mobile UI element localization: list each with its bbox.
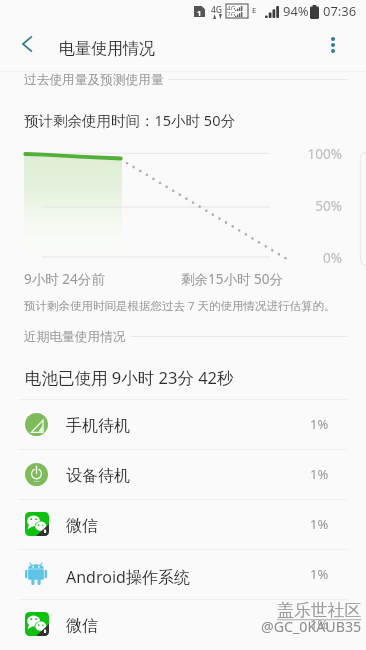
staticText: 1% (310, 465, 329, 483)
staticText: @GC_0KAUB35 (261, 617, 362, 636)
staticText: 9小时 24分前 (24, 270, 105, 288)
staticText: 1% (310, 515, 329, 533)
button[interactable]: Back (4, 25, 50, 63)
staticText: Android操作系统 (66, 566, 190, 588)
button[interactable]: 微信 (0, 499, 366, 549)
staticText: 1 (197, 8, 202, 18)
button[interactable]: 手机待机 (0, 399, 366, 449)
button[interactable]: 设备待机 (0, 449, 366, 499)
staticText: 0% (291, 249, 342, 267)
staticText: 剩余15小时 50分 (181, 270, 283, 288)
staticText: 100% (291, 145, 342, 163)
staticText: 电量使用情况 (59, 39, 155, 59)
staticText: 1% (310, 415, 329, 433)
button[interactable]: 微信 (0, 599, 366, 649)
staticText: 1% (310, 565, 329, 583)
staticText: 50% (291, 197, 342, 215)
staticText: 预计剩余使用时间是根据您过去 7 天的使用情况进行估算的。 (24, 298, 336, 314)
staticText: 电池已使用 9小时 23分 42秒 (25, 366, 234, 389)
staticText: 预计剩余使用时间：15小时 50分 (24, 110, 235, 130)
staticText: 设备待机 (66, 466, 130, 486)
staticText: 4G (211, 4, 223, 16)
staticText: 07:36 (323, 2, 357, 20)
staticText: 微信 (66, 516, 98, 536)
staticText: 微信 (66, 616, 98, 636)
staticText: 过去使用量及预测使用量 (24, 72, 164, 88)
button[interactable]: Android操作系统 (0, 549, 366, 599)
button[interactable]: More options (311, 24, 355, 62)
staticText: 4G (227, 4, 236, 10)
staticText: 近期电量使用情况 (24, 329, 126, 345)
staticText: 2G (227, 10, 236, 16)
staticText: 手机待机 (66, 416, 130, 436)
staticText: 1% (310, 615, 329, 633)
staticText: 94% (283, 2, 309, 20)
staticText: 盖乐世社区 (277, 600, 362, 621)
staticText: E (252, 5, 257, 15)
